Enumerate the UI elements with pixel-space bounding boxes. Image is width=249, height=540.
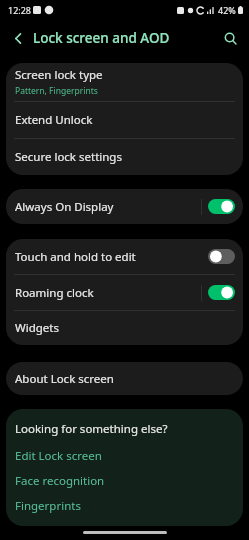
button[interactable]: Touch and hold to edit [6,239,243,274]
button[interactable]: Back [6,26,30,50]
staticText: Looking for something else? [15,421,168,437]
staticText: Roaming clock [15,285,201,301]
staticText: Pattern, Fingerprints [15,85,98,97]
staticText: Secure lock settings [15,149,122,165]
button[interactable]: Fingerprints [15,498,234,514]
button[interactable]: On [208,199,235,214]
staticText: Always On Display [15,199,201,215]
staticText: Face recognition [15,473,105,489]
button[interactable]: Extend Unlock [6,102,243,138]
staticText: 12:28 [8,4,32,16]
staticText: Widgets [15,320,59,336]
button[interactable]: Search [218,26,242,50]
button[interactable]: On [208,285,235,300]
button[interactable]: Edit Lock screen [15,448,234,464]
staticText: About Lock screen [15,371,114,387]
button[interactable]: Always On Display [6,189,243,224]
staticText: Touch and hold to edit [15,249,208,265]
button[interactable]: Roaming clock [6,275,243,310]
staticText: Fingerprints [15,498,81,514]
staticText: Screen lock type [15,67,103,83]
button[interactable]: Secure lock settings [6,139,243,175]
staticText: Edit Lock screen [15,448,102,464]
staticText: Extend Unlock [15,112,93,128]
button[interactable]: Widgets [6,311,243,345]
staticText: Lock screen and AOD [33,29,170,47]
button[interactable]: Off [208,249,235,264]
button[interactable]: Screen lock type [6,63,243,101]
button[interactable]: Face recognition [15,473,234,489]
button[interactable]: About Lock screen [6,362,243,395]
staticText: 42% [218,4,236,16]
